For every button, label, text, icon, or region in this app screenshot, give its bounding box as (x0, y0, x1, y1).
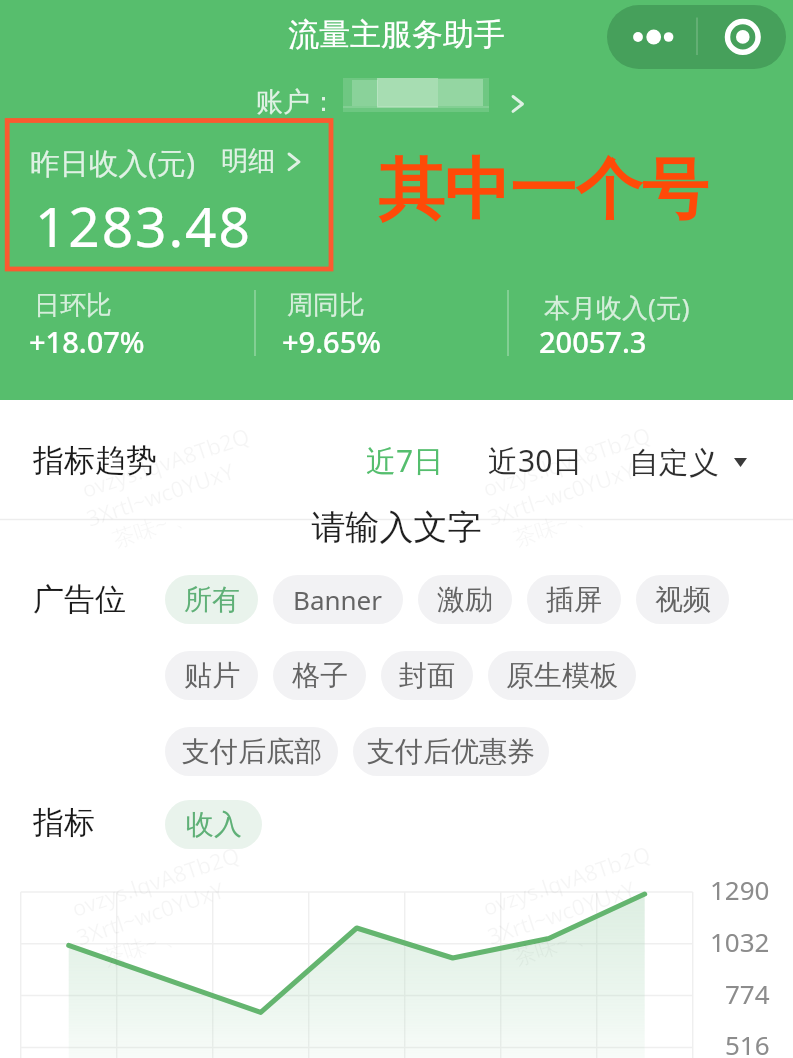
staticText: 3Xrtl~wc0YUxY (483, 873, 639, 951)
button[interactable]: 自定义 (616, 430, 764, 488)
staticText: 3Xrtl~wc0YUxY (72, 874, 228, 952)
button[interactable]: 近7日 (352, 431, 458, 489)
staticText: 指标趋势 (33, 441, 157, 480)
staticText: 茶味~ 、 (509, 916, 599, 971)
staticText: ovzys.lqvA8Tb2Q (479, 419, 654, 503)
staticText: 贴片 (184, 658, 240, 693)
button[interactable]: 收入 (165, 800, 262, 849)
staticText: 3Xrtl~wc0YUxY (483, 454, 639, 532)
staticText: 茶味~ 、 (509, 497, 599, 552)
staticText: 插屏 (546, 582, 602, 617)
staticText: 视频 (655, 582, 711, 617)
staticText: 流量主服务助手 (0, 15, 793, 54)
button[interactable]: 插屏 (527, 575, 621, 624)
staticText: 账户： (256, 85, 337, 119)
staticText: 原生模板 (506, 658, 618, 693)
button[interactable]: 所有 (165, 575, 258, 624)
staticText: 支付后优惠券 (367, 734, 535, 769)
staticText: 周同比 (287, 289, 365, 322)
staticText: Banner (293, 582, 383, 617)
staticText: 日环比 (34, 289, 112, 322)
staticText: 1032 (710, 924, 770, 959)
staticText: 所有 (184, 582, 240, 617)
staticText: 激励 (437, 582, 493, 617)
button[interactable]: 激励 (418, 575, 512, 624)
staticText: 其中一个号 (378, 148, 708, 231)
staticText: 774 (725, 976, 770, 1011)
button[interactable]: Banner (273, 575, 403, 624)
staticText: 茶味~ 、 (108, 498, 198, 553)
staticText: 封面 (399, 658, 455, 693)
button[interactable]: 近30日 (469, 431, 601, 489)
button[interactable]: 视频 (636, 575, 729, 624)
staticText: 格子 (292, 658, 348, 693)
staticText: 近7日 (366, 440, 444, 481)
staticText: 1290 (710, 872, 770, 907)
staticText: +9.65% (282, 322, 381, 361)
staticText: 自定义 (629, 444, 719, 482)
button[interactable]: 支付后优惠券 (353, 727, 549, 776)
staticText: 广告位 (33, 580, 126, 619)
button[interactable]: 贴片 (165, 651, 258, 700)
staticText: ovzys.lqvA8Tb2Q (68, 839, 243, 923)
staticText: 本月收入(元) (544, 289, 690, 325)
staticText: 516 (725, 1027, 770, 1058)
button[interactable]: 封面 (381, 651, 473, 700)
button[interactable]: 账户： (248, 76, 530, 118)
staticText: 请输入文字 (0, 506, 793, 549)
staticText: 3Xrtl~wc0YUxY (82, 455, 238, 533)
staticText: 20057.3 (539, 322, 647, 361)
staticText: 茶味~ 、 (98, 917, 188, 972)
button[interactable]: 原生模板 (488, 651, 636, 700)
staticText: ovzys.lqvA8Tb2Q (479, 838, 654, 922)
button[interactable]: Close mini program (697, 5, 786, 69)
staticText: 明细 (221, 144, 275, 178)
staticText: ovzys.lqvA8Tb2Q (78, 420, 253, 504)
staticText: +18.07% (29, 322, 145, 361)
staticText: 支付后底部 (182, 734, 322, 769)
staticText: 近30日 (488, 440, 583, 481)
button[interactable]: 格子 (273, 651, 366, 700)
staticText: 收入 (186, 807, 242, 842)
staticText: 昨日收入(元) (30, 142, 196, 182)
staticText: 1283.48 (35, 188, 252, 263)
button[interactable]: More options (607, 5, 697, 69)
staticText: 指标 (33, 803, 95, 842)
button[interactable]: 昨日收入(元) (20, 136, 312, 256)
button[interactable]: 支付后底部 (165, 727, 338, 776)
